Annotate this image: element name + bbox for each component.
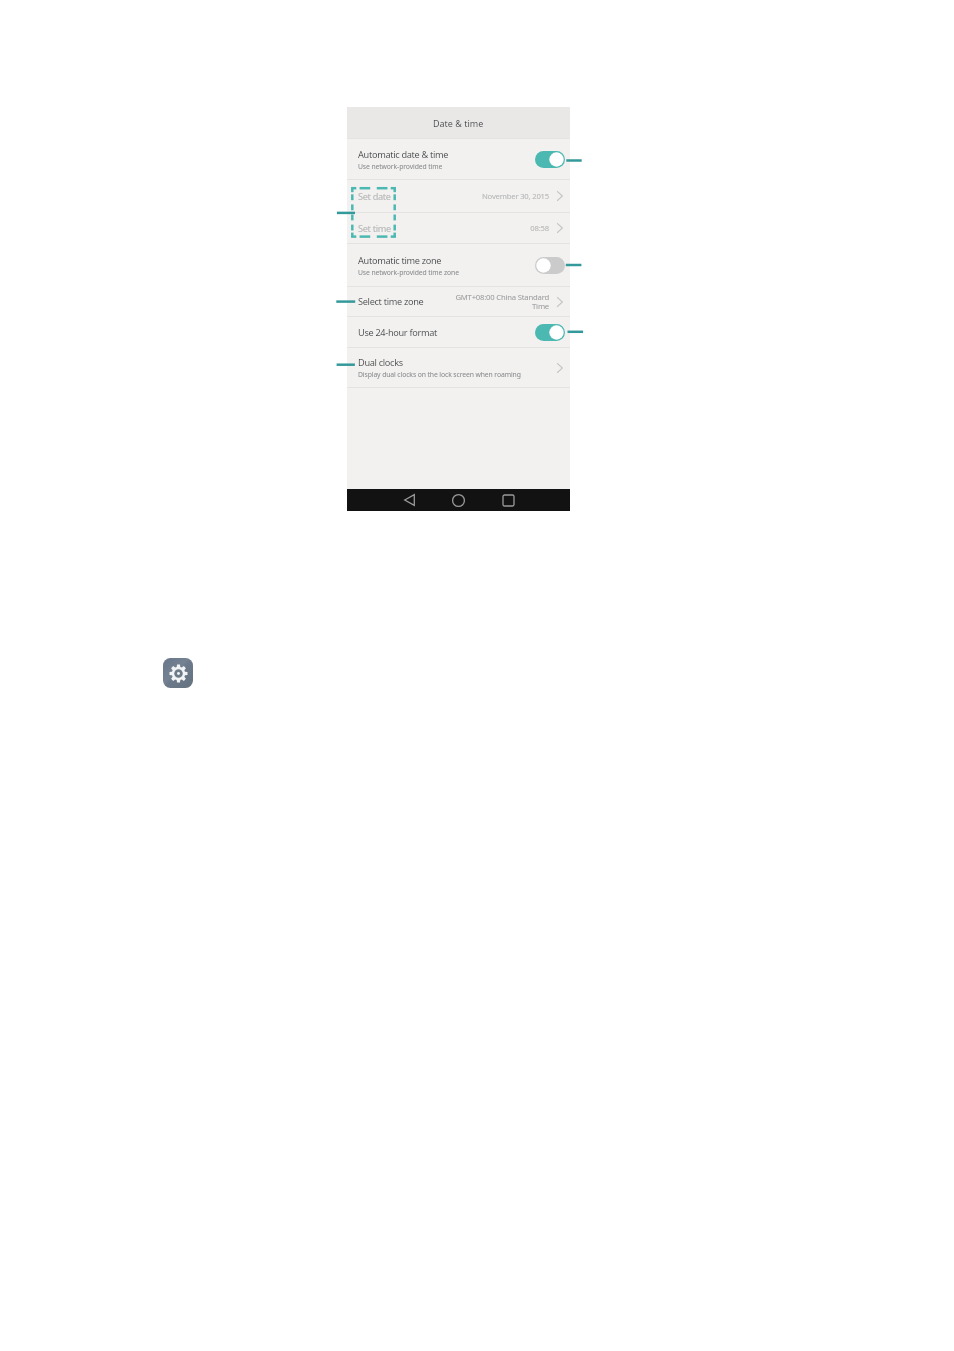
button[interactable]: Back — [396, 489, 422, 511]
staticText: Use network-provided time — [358, 162, 443, 171]
staticText: GMT+08:00 China Standard Time — [454, 292, 549, 311]
button[interactable]: Select time zone — [347, 287, 570, 316]
staticText: Automatic date & time — [358, 148, 449, 161]
button[interactable]: Switch on — [535, 151, 565, 168]
button[interactable]: Switch on — [535, 324, 565, 341]
staticText: November 30, 2015 — [454, 191, 549, 201]
staticText: Set time — [358, 222, 391, 235]
staticText: Automatic time zone — [358, 254, 442, 267]
staticText: Display dual clocks on the lock screen w… — [358, 370, 521, 379]
button[interactable]: Automatic time zone — [347, 244, 570, 286]
staticText: Select time zone — [358, 295, 424, 308]
staticText: Set date — [358, 190, 391, 203]
staticText: Date & time — [433, 117, 484, 129]
button[interactable]: Recent apps — [495, 489, 521, 511]
staticText: Use 24-hour format — [358, 326, 535, 339]
button[interactable]: Set time — [347, 213, 570, 243]
button[interactable]: Settings — [163, 658, 193, 688]
button[interactable]: Automatic date & time — [347, 139, 570, 179]
button[interactable]: Set date — [347, 180, 570, 212]
button[interactable]: Switch off — [535, 257, 565, 274]
staticText: 08:58 — [454, 223, 549, 233]
staticText: Use network-provided time zone — [358, 268, 459, 277]
staticText: Dual clocks — [358, 356, 403, 369]
button[interactable]: Home — [445, 489, 471, 511]
button[interactable]: Dual clocks — [347, 348, 570, 387]
button[interactable]: Use 24-hour format — [347, 317, 570, 347]
